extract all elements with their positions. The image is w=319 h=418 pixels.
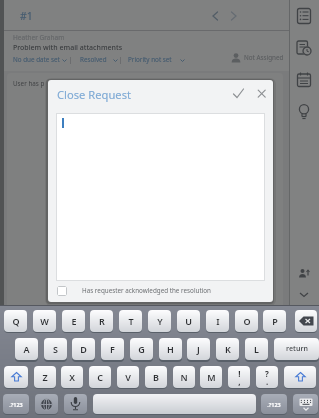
staticText: ? . xyxy=(265,368,269,387)
staticText: J xyxy=(197,343,200,355)
button[interactable] xyxy=(35,394,58,414)
staticText: U xyxy=(185,315,192,327)
button[interactable] xyxy=(293,394,318,414)
staticText: .?123 xyxy=(267,401,281,408)
button[interactable]: .?123 xyxy=(261,394,287,414)
staticText: Resolved xyxy=(80,55,107,64)
staticText: D xyxy=(80,343,87,355)
button[interactable]: Z xyxy=(34,366,56,388)
button[interactable] xyxy=(284,366,316,388)
button[interactable]: D xyxy=(72,338,95,360)
button[interactable]: L xyxy=(245,338,268,360)
staticText: I xyxy=(216,315,220,327)
button[interactable] xyxy=(295,310,317,332)
staticText: K xyxy=(225,343,231,355)
button[interactable]: P xyxy=(263,310,286,332)
staticText: Heather Graham xyxy=(13,33,65,42)
button[interactable]: O xyxy=(235,310,258,332)
staticText: return xyxy=(286,344,308,354)
button[interactable]: ? . xyxy=(256,366,278,388)
button[interactable]: K xyxy=(216,338,239,360)
staticText: Problem with email attachments xyxy=(13,43,123,53)
button[interactable] xyxy=(4,366,28,388)
button[interactable] xyxy=(296,8,312,24)
button[interactable]: X xyxy=(61,366,83,388)
button[interactable] xyxy=(297,104,311,121)
staticText: F xyxy=(110,343,115,355)
button[interactable]: V xyxy=(117,366,139,388)
staticText: ! , xyxy=(238,368,241,387)
button[interactable]: T xyxy=(119,310,142,332)
staticText: X xyxy=(69,371,75,383)
button[interactable] xyxy=(93,394,256,414)
button[interactable]: W xyxy=(33,310,56,332)
staticText: C xyxy=(97,371,103,383)
button[interactable] xyxy=(232,88,245,99)
staticText: L xyxy=(254,343,259,355)
staticText: No due date set xyxy=(13,55,60,64)
button[interactable] xyxy=(298,268,310,280)
button[interactable]: F xyxy=(101,338,124,360)
staticText: Close Request xyxy=(57,87,132,102)
button[interactable] xyxy=(257,89,267,99)
button[interactable]: C xyxy=(89,366,111,388)
button[interactable]: S xyxy=(44,338,67,360)
button[interactable]: Y xyxy=(148,310,171,332)
button[interactable]: J xyxy=(187,338,210,360)
button[interactable]: G xyxy=(130,338,153,360)
staticText: Z xyxy=(42,371,48,383)
staticText: Has requester acknowledged the resolutio… xyxy=(82,286,212,295)
staticText: | xyxy=(119,55,123,64)
button[interactable]: I xyxy=(206,310,229,332)
button[interactable]: R xyxy=(90,310,113,332)
staticText: O xyxy=(243,315,251,327)
button[interactable] xyxy=(296,40,312,56)
staticText: V xyxy=(125,371,131,383)
button[interactable]: U xyxy=(177,310,200,332)
button[interactable] xyxy=(296,72,312,88)
staticText: | xyxy=(69,55,73,64)
staticText: H xyxy=(167,343,174,355)
staticText: E xyxy=(71,315,77,327)
button[interactable]: E xyxy=(62,310,85,332)
button[interactable] xyxy=(229,11,239,21)
button[interactable] xyxy=(57,286,67,296)
staticText: #1 xyxy=(20,9,33,23)
button[interactable]: A xyxy=(15,338,38,360)
button[interactable]: .?123 xyxy=(3,394,29,414)
staticText: M xyxy=(207,371,216,383)
button[interactable]: N xyxy=(173,366,195,388)
staticText: Priority not set xyxy=(128,55,172,64)
staticText: Q xyxy=(12,315,20,327)
button[interactable]: Q xyxy=(4,310,27,332)
button[interactable] xyxy=(210,11,220,21)
staticText: N xyxy=(180,371,188,383)
button[interactable]: ! , xyxy=(228,366,250,388)
button[interactable] xyxy=(299,292,309,298)
staticText: .?123 xyxy=(9,401,23,408)
button[interactable]: H xyxy=(159,338,182,360)
button[interactable]: return xyxy=(274,338,319,360)
staticText: T xyxy=(128,315,134,327)
staticText: W xyxy=(40,315,49,327)
staticText: B xyxy=(153,371,159,383)
staticText: User has p xyxy=(13,79,45,88)
staticText: A xyxy=(23,343,30,355)
staticText: G xyxy=(138,343,145,355)
staticText: Y xyxy=(157,315,163,327)
staticText: P xyxy=(272,315,278,327)
staticText: S xyxy=(53,343,58,355)
button[interactable]: B xyxy=(145,366,167,388)
button[interactable] xyxy=(64,394,87,414)
staticText: Not Assigned xyxy=(244,53,284,62)
button[interactable]: M xyxy=(200,366,222,388)
staticText: R xyxy=(99,315,105,327)
